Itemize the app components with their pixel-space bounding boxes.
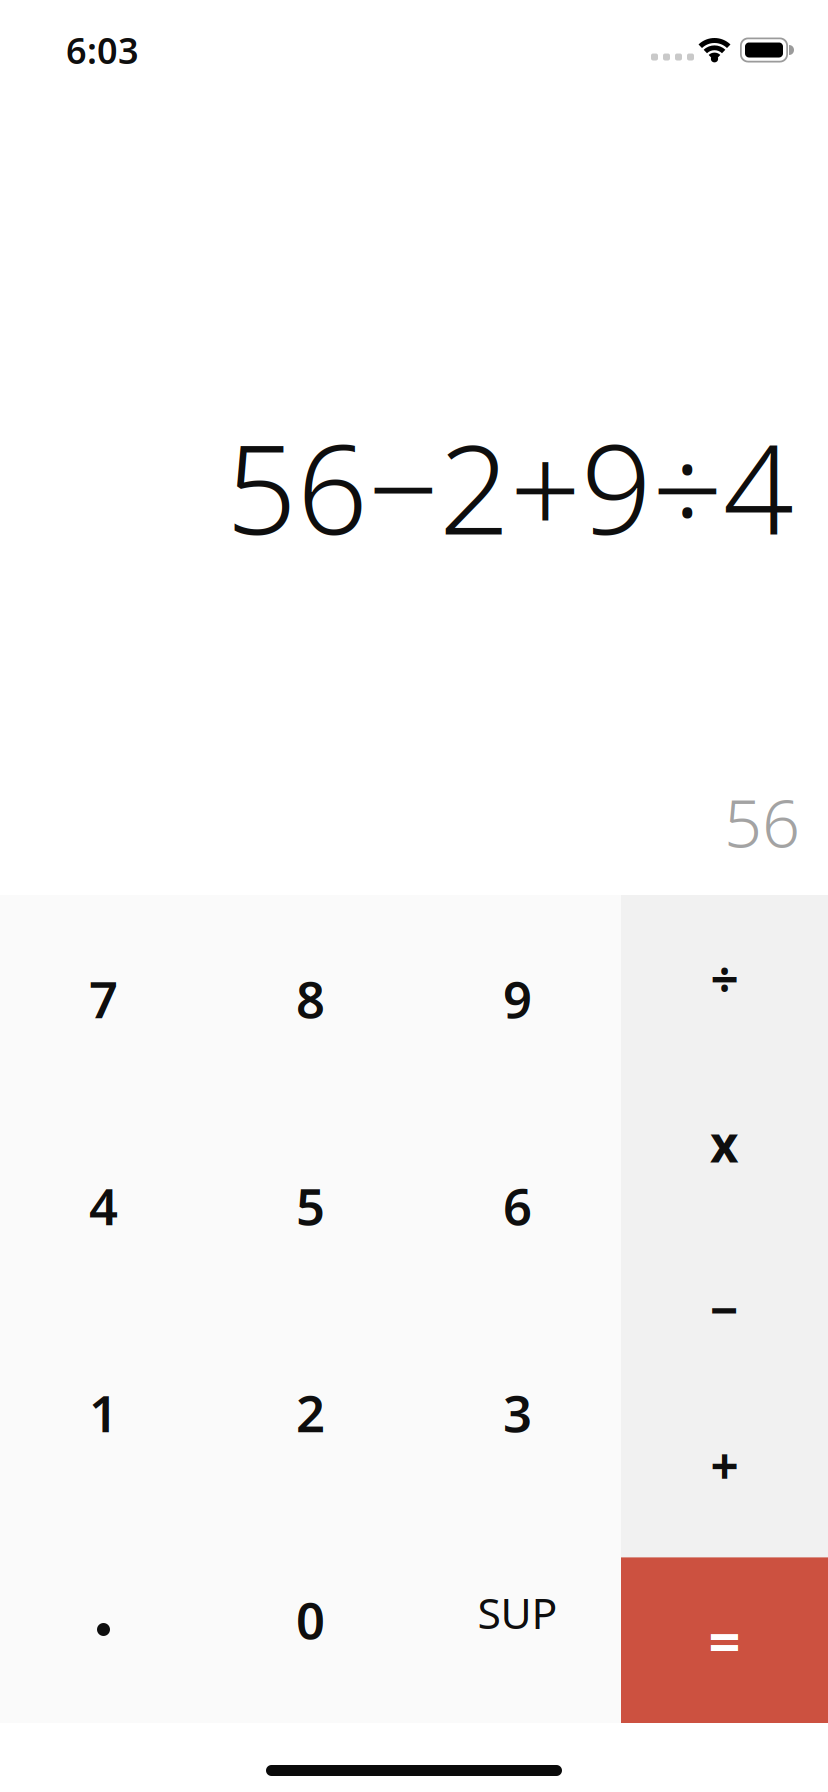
staticText: SUP [477, 1584, 557, 1641]
staticText: 1 [89, 1379, 118, 1446]
button[interactable]: SUP [414, 1516, 621, 1723]
staticText: 56 [724, 777, 800, 866]
button[interactable]: − [621, 1226, 828, 1392]
button[interactable]: 0 [207, 1516, 414, 1723]
staticText: x [710, 1111, 739, 1176]
button[interactable]: 8 [207, 895, 414, 1102]
staticText: 5 [296, 1172, 325, 1239]
staticText: 9 [503, 965, 532, 1032]
button[interactable]: 3 [414, 1309, 621, 1516]
staticText: − [710, 1276, 739, 1342]
staticText: ÷ [710, 945, 738, 1010]
button[interactable]: Decimal point [0, 1516, 207, 1723]
button[interactable]: 5 [207, 1102, 414, 1309]
button[interactable]: 2 [207, 1309, 414, 1516]
staticText: 8 [296, 965, 325, 1032]
button[interactable]: ÷ [621, 895, 828, 1061]
staticText: = [708, 1603, 740, 1677]
staticText: 6 [503, 1172, 532, 1239]
button[interactable]: 9 [414, 895, 621, 1102]
staticText: + [710, 1433, 738, 1498]
button[interactable]: 6 [414, 1102, 621, 1309]
staticText: 4 [89, 1172, 118, 1239]
staticText: 2 [296, 1379, 325, 1446]
button[interactable]: = [621, 1557, 828, 1723]
staticText: 3 [503, 1379, 532, 1446]
staticText: 56−2+9÷4 [226, 404, 794, 569]
button[interactable]: 4 [0, 1102, 207, 1309]
button[interactable]: 1 [0, 1309, 207, 1516]
staticText: 6:03 [66, 26, 139, 74]
button[interactable]: x [621, 1061, 828, 1226]
staticText: 0 [296, 1586, 325, 1653]
button[interactable]: + [621, 1392, 828, 1557]
button[interactable]: 7 [0, 895, 207, 1102]
staticText: 7 [89, 965, 118, 1032]
